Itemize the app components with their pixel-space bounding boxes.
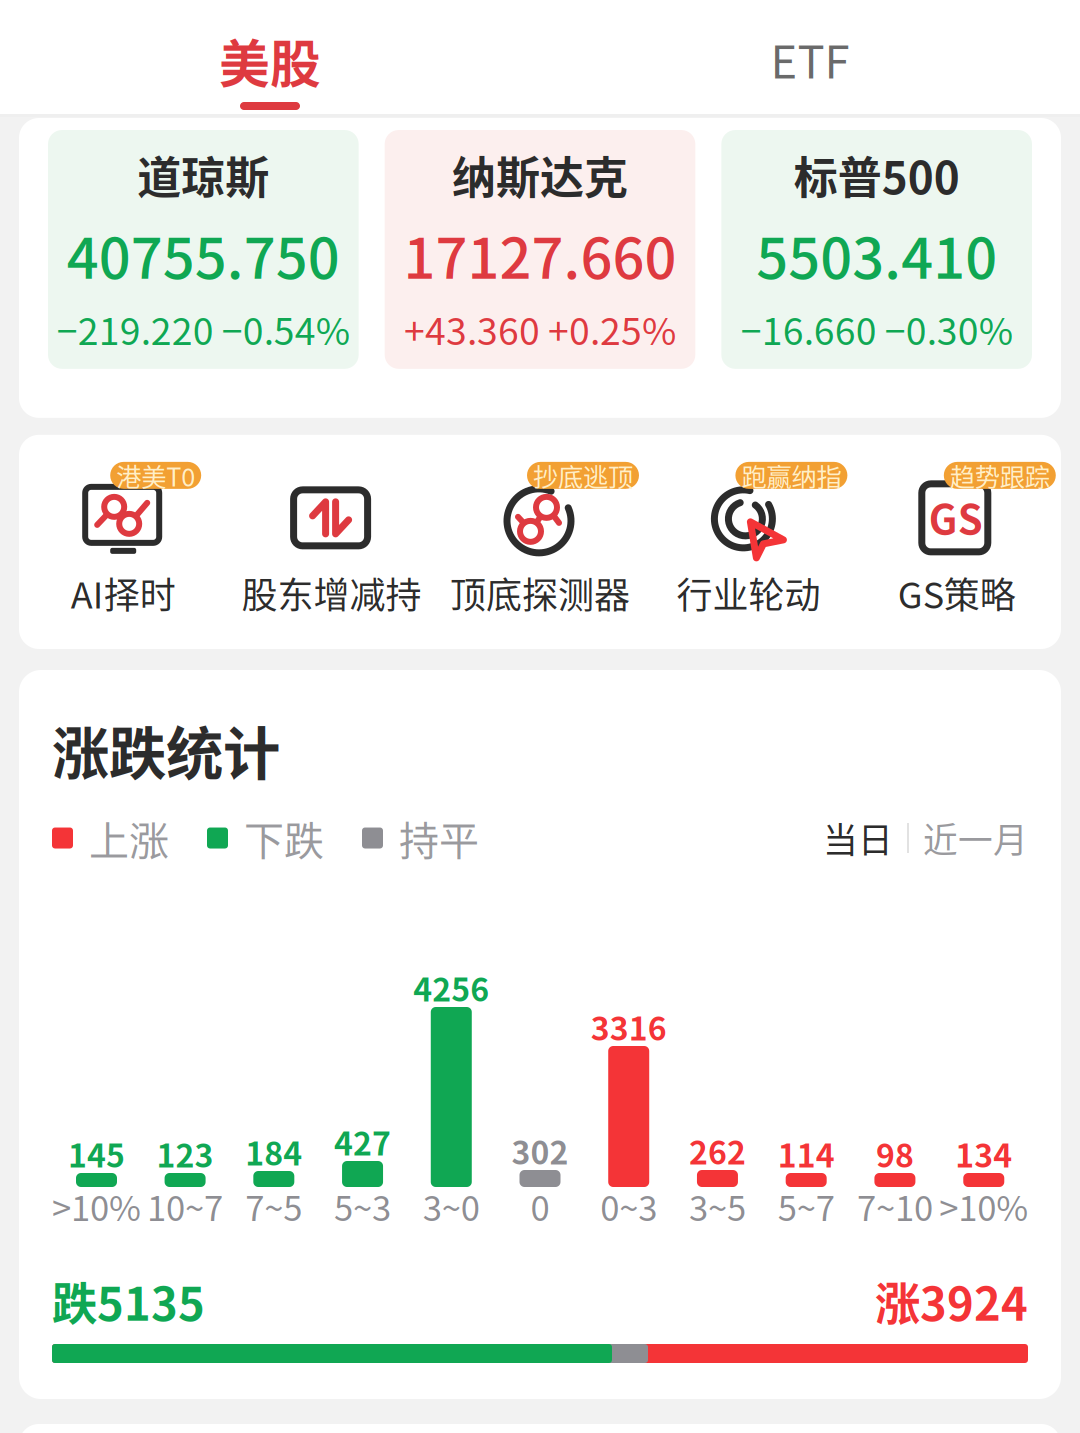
staticText: 下跌: [244, 809, 324, 867]
staticText: 98: [876, 1130, 914, 1177]
staticText: −219.220 −0.54%: [57, 302, 350, 356]
staticText: 5~7: [778, 1181, 835, 1231]
staticText: 上涨: [89, 809, 169, 867]
staticText: 145: [68, 1130, 125, 1177]
staticText: 184: [245, 1128, 302, 1175]
staticText: +43.360 +0.25%: [404, 302, 676, 356]
staticText: 持平: [399, 809, 479, 867]
staticText: 134: [955, 1130, 1012, 1177]
staticText: 3~5: [689, 1181, 746, 1231]
staticText: 17127.660: [403, 214, 676, 295]
staticText: 10~7: [147, 1181, 223, 1231]
staticText: 顶底探测器: [450, 567, 630, 619]
staticText: 趋势跟踪: [950, 457, 1050, 494]
button[interactable]: 道琼斯: [48, 130, 359, 369]
staticText: 0~3: [600, 1181, 657, 1231]
staticText: 7~5: [245, 1181, 302, 1231]
staticText: 纳斯达克: [452, 143, 628, 207]
button[interactable]: 跑赢纳指: [644, 479, 853, 619]
button[interactable]: 近一月: [923, 819, 1028, 857]
staticText: 262: [689, 1127, 746, 1174]
staticText: 7~10: [857, 1181, 933, 1231]
staticText: 跑赢纳指: [741, 457, 841, 494]
staticText: ETF: [770, 26, 849, 92]
staticText: 3316: [591, 1003, 667, 1050]
staticText: 涨3924: [875, 1268, 1028, 1334]
button[interactable]: 股东增减持: [227, 479, 436, 619]
staticText: GS策略: [898, 567, 1016, 619]
button[interactable]: 纳斯达克: [385, 130, 695, 369]
button[interactable]: GS: [853, 479, 1061, 619]
staticText: 5~3: [334, 1181, 391, 1231]
staticText: 302: [511, 1127, 568, 1174]
button[interactable]: 抄底逃顶: [436, 479, 644, 619]
button[interactable]: 港美T0: [19, 479, 227, 619]
staticText: 涨跌统计: [52, 708, 280, 791]
staticText: 道琼斯: [137, 143, 269, 207]
staticText: 当日: [823, 813, 893, 863]
staticText: >10%: [52, 1181, 141, 1231]
staticText: AI择时: [71, 567, 176, 619]
staticText: −16.660 −0.30%: [741, 302, 1013, 356]
staticText: 3~0: [423, 1181, 480, 1231]
staticText: >10%: [939, 1181, 1028, 1231]
staticText: 跌5135: [52, 1268, 205, 1334]
staticText: 114: [778, 1130, 835, 1177]
staticText: 港美T0: [116, 457, 195, 494]
button[interactable]: ETF: [540, 0, 1080, 114]
staticText: 4256: [413, 964, 489, 1011]
staticText: 40755.750: [67, 214, 340, 295]
staticText: 美股: [219, 24, 321, 97]
staticText: 427: [334, 1118, 391, 1165]
staticText: 行业轮动: [676, 567, 820, 619]
staticText: 股东增减持: [242, 567, 422, 619]
staticText: 0: [530, 1181, 549, 1231]
button[interactable]: 当日: [823, 819, 893, 857]
button[interactable]: 美股: [0, 0, 540, 114]
staticText: 5503.410: [756, 214, 997, 295]
staticText: 抄底逃顶: [533, 457, 633, 494]
staticText: GS: [929, 488, 983, 546]
staticText: 标普500: [794, 143, 960, 207]
button[interactable]: 标普500: [721, 130, 1032, 369]
staticText: 123: [157, 1130, 214, 1177]
staticText: 近一月: [923, 813, 1028, 863]
